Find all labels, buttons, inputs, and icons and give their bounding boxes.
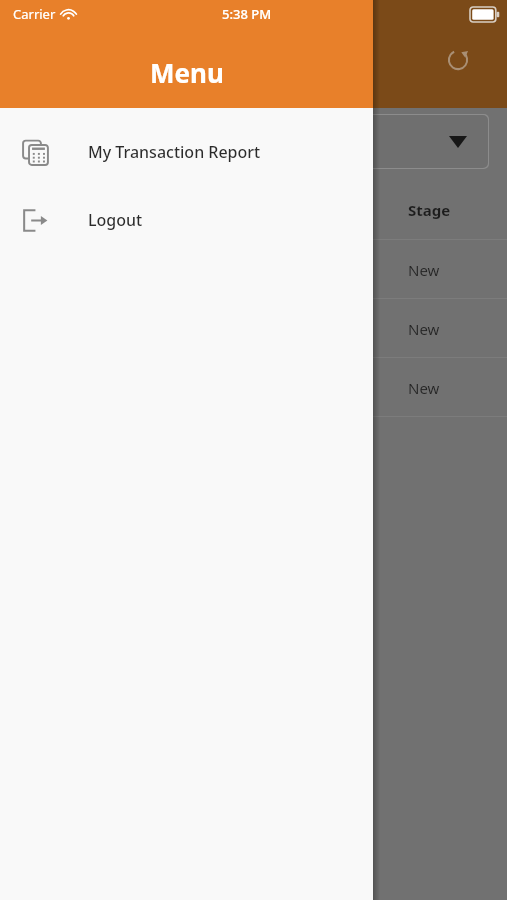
button[interactable]: My Transaction Report bbox=[0, 126, 373, 178]
button[interactable]: Refresh bbox=[442, 44, 474, 76]
button[interactable]: New bbox=[330, 358, 507, 417]
button[interactable] bbox=[330, 114, 489, 169]
staticText: New bbox=[408, 319, 440, 339]
staticText: Stage bbox=[408, 200, 451, 220]
staticText: Logout bbox=[88, 209, 143, 231]
button[interactable]: Logout bbox=[0, 194, 373, 246]
button[interactable]: New bbox=[330, 299, 507, 358]
staticText: 5:38 PM bbox=[222, 5, 272, 23]
staticText: New bbox=[408, 378, 440, 398]
staticText: Carrier bbox=[13, 5, 56, 23]
staticText: My Transaction Report bbox=[88, 141, 261, 163]
staticText: Menu bbox=[150, 55, 224, 90]
staticText: New bbox=[408, 260, 440, 280]
button[interactable]: New bbox=[330, 240, 507, 299]
